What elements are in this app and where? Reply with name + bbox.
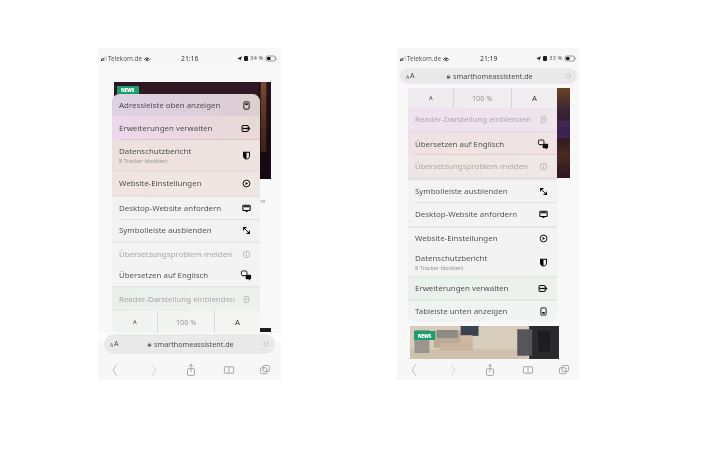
staticText: A [133, 318, 137, 326]
staticText: Telekom.de [407, 54, 441, 63]
staticText: Adressleiste oben anzeigen [119, 100, 221, 111]
button[interactable]: A [408, 88, 453, 108]
staticText: l [259, 190, 261, 197]
staticText: Desktop-Website anfordern [119, 203, 222, 214]
button[interactable]: Reader-Darstellung einblenden [112, 288, 260, 311]
button[interactable]: Tableiste unten anzeigen [408, 301, 557, 322]
button[interactable]: A [112, 311, 157, 333]
staticText: ne [259, 197, 266, 204]
button[interactable]: Adressleiste oben anzeigen [112, 94, 260, 116]
button[interactable]: Website-Einstellungen [112, 172, 260, 195]
staticText: 21:16 [181, 54, 199, 63]
staticText: Übersetzen auf Englisch [415, 139, 505, 150]
button[interactable]: Forward [144, 361, 164, 378]
staticText: Desktop-Website anfordern [415, 209, 518, 220]
staticText: 33 % [549, 54, 563, 62]
staticText: Übersetzen auf Englisch [119, 270, 209, 281]
button[interactable]: A [512, 88, 557, 108]
button[interactable]: Übersetzungsproblem melden [408, 155, 557, 177]
staticText: Website-Einstellungen [119, 178, 202, 189]
button[interactable]: Symbolleiste ausblenden [408, 180, 557, 203]
staticText: 100 % [176, 317, 197, 327]
staticText: Tableiste unten anzeigen [415, 306, 508, 317]
staticText: 8 Tracker blockiert [415, 264, 464, 272]
button[interactable]: A [215, 311, 260, 333]
staticText: Datenschutzbericht [415, 253, 488, 264]
button[interactable]: Datenschutzbericht [112, 140, 260, 170]
staticText: A [235, 317, 240, 327]
staticText: A [110, 342, 114, 349]
staticText: Website-Einstellungen [415, 233, 498, 244]
button[interactable]: Reader-Darstellung einblenden [408, 108, 557, 131]
staticText: Datenschutzbericht [119, 146, 192, 157]
staticText: 34 % [250, 54, 264, 62]
button[interactable]: Übersetzen auf Englisch [408, 133, 557, 155]
button[interactable]: Bookmarks [518, 361, 538, 378]
button[interactable]: Desktop-Website anfordern [408, 203, 557, 226]
staticText: Symbolleiste ausblenden [119, 225, 212, 236]
staticText: 8 Tracker blockiert [119, 157, 168, 165]
staticText: Erweiterungen verwalten [119, 123, 213, 134]
button[interactable]: A [104, 334, 275, 354]
button[interactable]: Erweiterungen verwalten [408, 278, 557, 299]
button[interactable]: Website-Einstellungen [408, 228, 557, 249]
staticText: A [429, 94, 433, 102]
staticText: Übersetzungsproblem melden [415, 161, 529, 172]
button[interactable]: Datenschutzbericht [408, 249, 557, 276]
staticText: NEWS [418, 333, 432, 339]
staticText: A [532, 93, 537, 103]
button[interactable]: Übersetzen auf Englisch [112, 265, 260, 286]
staticText: A [406, 74, 410, 81]
staticText: smarthomeassistent.de [154, 339, 234, 349]
staticText: Telekom.de [108, 54, 142, 63]
staticText: A [410, 71, 415, 81]
staticText: A [114, 339, 119, 349]
button[interactable]: Back [404, 361, 424, 378]
staticText: Reader-Darstellung einblenden [119, 294, 235, 305]
button[interactable]: Forward [443, 361, 463, 378]
button[interactable]: Tabs [554, 361, 574, 378]
staticText: 21:19 [480, 54, 498, 63]
button[interactable]: Symbolleiste ausblenden [112, 220, 260, 241]
button[interactable]: 100 % [454, 88, 511, 108]
button[interactable]: Back [105, 361, 125, 378]
button[interactable]: Bookmarks [219, 361, 239, 378]
staticText: Reader-Darstellung einblenden [415, 114, 531, 125]
button[interactable]: Share [181, 361, 201, 378]
button[interactable]: Übersetzungsproblem melden [112, 243, 260, 265]
staticText: Symbolleiste ausblenden [415, 186, 508, 197]
button[interactable]: A [400, 68, 577, 84]
staticText: NEWS [121, 87, 135, 93]
button[interactable]: Share [480, 361, 500, 378]
staticText: 100 % [472, 93, 493, 103]
button[interactable]: Erweiterungen verwalten [112, 116, 260, 140]
button[interactable]: Tabs [255, 361, 275, 378]
button[interactable]: 100 % [158, 311, 214, 333]
staticText: smarthomeassistent.de [453, 71, 533, 81]
button[interactable]: Desktop-Website anfordern [112, 197, 260, 220]
staticText: Erweiterungen verwalten [415, 283, 509, 294]
staticText: Übersetzungsproblem melden [119, 249, 233, 260]
